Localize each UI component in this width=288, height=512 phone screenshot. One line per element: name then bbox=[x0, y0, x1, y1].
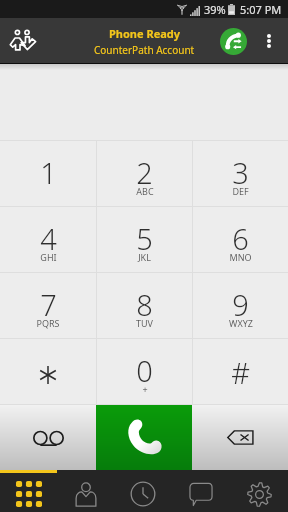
staticText: CounterPath Account bbox=[94, 43, 195, 57]
button[interactable]: History bbox=[114, 470, 172, 512]
button[interactable]: Transfer bbox=[10, 18, 36, 63]
staticText: 5 bbox=[136, 219, 153, 258]
button[interactable]: 6 bbox=[193, 207, 288, 272]
button[interactable]: Keypad bbox=[0, 470, 57, 512]
button[interactable]: Contacts bbox=[57, 470, 114, 512]
button[interactable]: Star bbox=[0, 339, 96, 404]
button[interactable]: 8 bbox=[97, 273, 192, 338]
staticText: 1 bbox=[40, 153, 57, 192]
button[interactable]: 9 bbox=[193, 273, 288, 338]
button[interactable]: 3 bbox=[193, 141, 288, 206]
staticText: 7 bbox=[40, 285, 57, 324]
button[interactable]: 5 bbox=[97, 207, 192, 272]
button[interactable]: 2 bbox=[97, 141, 192, 206]
staticText: GHI bbox=[40, 251, 57, 263]
staticText: 0 bbox=[136, 351, 153, 390]
staticText: JKL bbox=[138, 251, 151, 263]
staticText: TUV bbox=[136, 317, 153, 329]
staticText: 3 bbox=[232, 153, 249, 192]
button[interactable]: 4 bbox=[0, 207, 96, 272]
staticText: # bbox=[231, 353, 250, 392]
button[interactable]: 1 bbox=[0, 141, 96, 206]
staticText: 8 bbox=[136, 285, 153, 324]
button[interactable]: Messages bbox=[172, 470, 230, 512]
button[interactable]: Call bbox=[96, 405, 192, 470]
staticText: 4 bbox=[40, 219, 57, 258]
button[interactable]: 0 bbox=[97, 339, 192, 404]
staticText: 39% bbox=[204, 2, 226, 17]
staticText: PQRS bbox=[36, 317, 60, 329]
staticText: 6 bbox=[232, 219, 249, 258]
button[interactable]: 7 bbox=[0, 273, 96, 338]
staticText: 2 bbox=[136, 153, 153, 192]
staticText: ABC bbox=[136, 185, 154, 197]
staticText: MNO bbox=[229, 251, 252, 263]
button[interactable]: Backspace bbox=[192, 405, 288, 470]
button[interactable]: More options bbox=[257, 21, 281, 61]
staticText: WXYZ bbox=[229, 317, 253, 329]
staticText: 9 bbox=[232, 285, 249, 324]
staticText: 5:07 PM bbox=[240, 2, 282, 17]
button[interactable]: Voicemail bbox=[0, 405, 96, 470]
staticText: Phone Ready bbox=[109, 26, 181, 41]
button[interactable]: Settings bbox=[230, 470, 288, 512]
staticText: + bbox=[142, 383, 148, 395]
button[interactable]: # bbox=[193, 339, 288, 404]
staticText: DEF bbox=[232, 185, 249, 197]
button[interactable]: Call transfer bbox=[216, 24, 250, 58]
